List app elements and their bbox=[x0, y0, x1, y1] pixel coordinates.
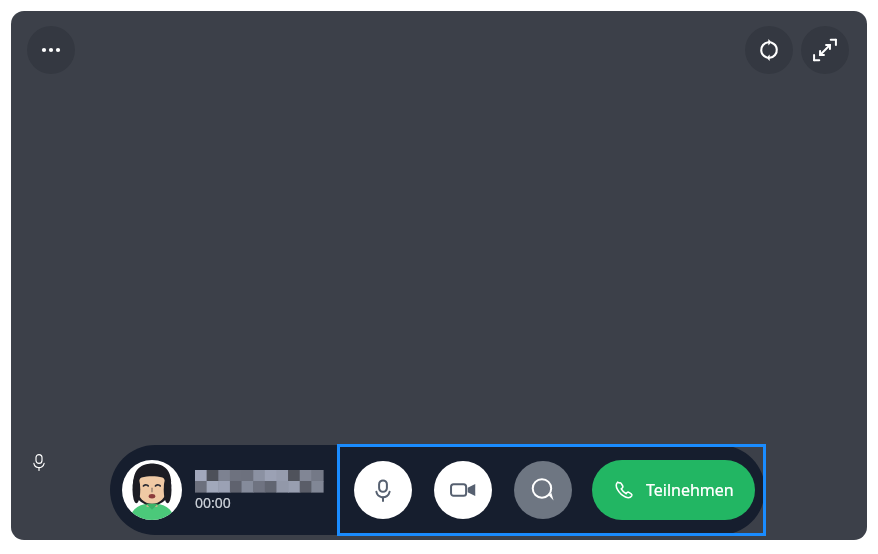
button[interactable]: Switch camera bbox=[745, 26, 793, 74]
button[interactable]: Turn off camera bbox=[434, 461, 492, 519]
button[interactable]: Expand bbox=[801, 26, 849, 74]
button[interactable]: Mute microphone bbox=[354, 461, 412, 519]
button[interactable]: Chat bbox=[514, 461, 572, 519]
staticText: 00:00 bbox=[195, 493, 231, 512]
staticText: Teilnehmen bbox=[646, 479, 734, 501]
other: Microphone bbox=[26, 449, 52, 475]
button[interactable]: Teilnehmen bbox=[592, 460, 755, 520]
button[interactable]: More options bbox=[27, 26, 75, 74]
